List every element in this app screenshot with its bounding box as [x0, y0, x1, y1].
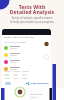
- button[interactable]: [13, 71, 20, 79]
- button[interactable]: [2, 44, 51, 51]
- button[interactable]: [22, 71, 29, 79]
- staticText: 420/720: [30, 96, 37, 98]
- button[interactable]: [5, 82, 11, 85]
- staticText: Tests With Detailed Analysis: [0, 3, 64, 16]
- staticText: Overall Score: [30, 93, 43, 96]
- staticText: A mix of subject specific exams to help …: [0, 16, 64, 24]
- staticText: Recent NEET Full Length Test: [4, 36, 35, 39]
- button[interactable]: [4, 71, 11, 79]
- button[interactable]: [2, 58, 51, 65]
- button[interactable]: [2, 51, 51, 58]
- button[interactable]: [2, 65, 51, 72]
- button[interactable]: Share scorecard: [26, 82, 49, 85]
- staticText: SHARE SCORECARD: [30, 82, 49, 85]
